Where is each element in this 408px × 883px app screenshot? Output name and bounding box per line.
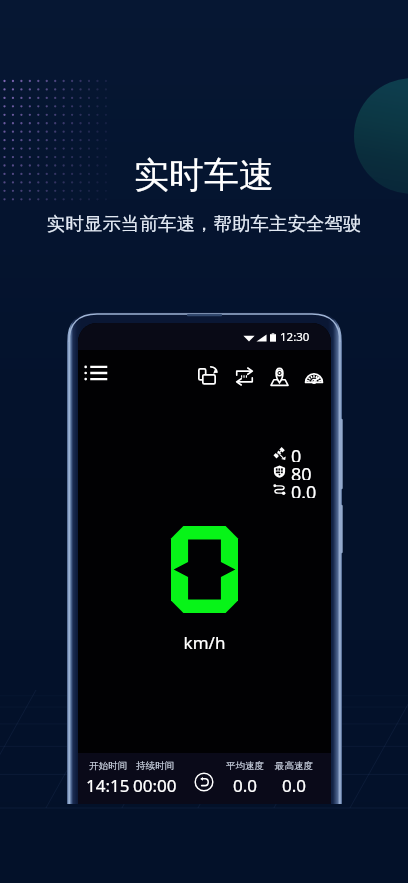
button[interactable]: Rotate screen [196,366,218,387]
staticText: km/h [78,631,331,654]
button[interactable]: Speedometer [304,366,324,387]
staticText: 实时显示当前车速，帮助车主安全驾驶 [47,212,362,235]
staticText: 平均速度 [226,760,264,772]
staticText: 12:30 [280,329,310,345]
staticText: 开始时间 [89,760,127,772]
button[interactable]: Location [270,366,289,387]
button[interactable]: Menu [84,364,108,382]
staticText: 14:15 [86,774,130,797]
staticText: 最高速度 [275,760,313,772]
staticText: 0 [291,444,302,462]
button[interactable]: Reset trip [194,772,214,792]
staticText: 00:00 [133,774,177,797]
staticText: 80 [291,462,312,480]
staticText: 0.0 [233,774,258,797]
staticText: 实时车速 [134,153,274,197]
staticText: 0.0 [282,774,307,797]
staticText: 0.0 [291,480,317,498]
button[interactable]: HUD mode [234,366,255,387]
staticText: 持续时间 [136,760,174,772]
